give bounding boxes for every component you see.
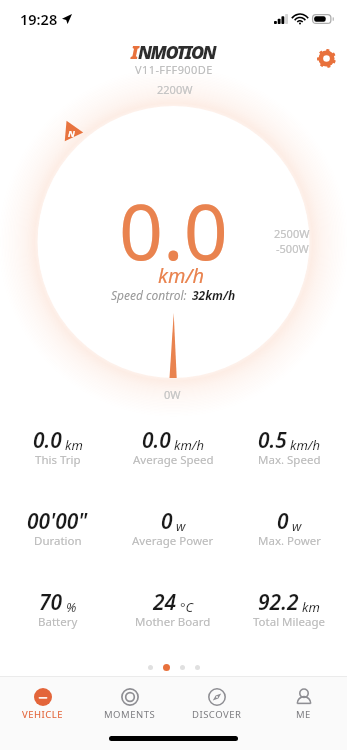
button[interactable]: DISCOVER xyxy=(173,682,260,724)
staticText: Total Mileage xyxy=(253,614,325,630)
button[interactable]: 70 xyxy=(0,584,115,665)
staticText: 0W xyxy=(164,387,181,402)
staticText: NMOTION xyxy=(138,40,216,65)
staticText: ME xyxy=(296,708,311,721)
button[interactable]: Page 3 xyxy=(180,665,185,670)
staticText: 92.2 xyxy=(258,588,299,617)
staticText: DISCOVER xyxy=(192,708,242,721)
staticText: km xyxy=(65,436,83,454)
button[interactable]: 24 xyxy=(115,584,231,665)
button[interactable]: Page 2 xyxy=(163,664,170,671)
staticText: 19:28 xyxy=(20,9,58,29)
staticText: w xyxy=(176,517,186,535)
staticText: 32km/h xyxy=(192,287,236,303)
staticText: I xyxy=(131,40,138,65)
staticText: 24 xyxy=(153,588,177,617)
staticText: Duration xyxy=(34,533,82,549)
button[interactable]: Settings xyxy=(309,41,343,75)
staticText: % xyxy=(66,598,77,616)
staticText: 00'00" xyxy=(27,507,88,536)
button[interactable]: VEHICLE xyxy=(0,682,86,724)
staticText: This Trip xyxy=(35,452,81,468)
staticText: MOMENTS xyxy=(104,708,156,721)
staticText: 2200W xyxy=(157,82,193,97)
staticText: km/h xyxy=(158,262,205,289)
staticText: Max. Power xyxy=(258,533,321,549)
button[interactable]: 0 xyxy=(231,503,347,584)
button[interactable]: MOMENTS xyxy=(86,682,173,724)
staticText: km/h xyxy=(174,436,204,454)
staticText: w xyxy=(292,517,302,535)
button[interactable]: 92.2 xyxy=(231,584,347,665)
staticText: 0.0 xyxy=(33,426,62,455)
button[interactable]: 0 xyxy=(115,503,231,584)
staticText: Max. Speed xyxy=(258,452,321,468)
staticText: km/h xyxy=(290,436,320,454)
button[interactable]: 00'00" xyxy=(0,503,115,584)
button[interactable]: 0.5 xyxy=(231,422,347,503)
staticText: V11-FFF900DE xyxy=(135,62,213,77)
staticText: km xyxy=(302,598,320,616)
staticText: 0.0 xyxy=(119,178,228,283)
staticText: °C xyxy=(180,598,194,616)
staticText: 70 xyxy=(39,588,63,617)
staticText: Battery xyxy=(38,614,78,630)
button[interactable]: ME xyxy=(260,682,347,724)
button[interactable]: 0.0 xyxy=(0,422,115,503)
staticText: 0 xyxy=(277,507,289,536)
staticText: Speed control: xyxy=(111,287,187,303)
button[interactable]: 0.0 xyxy=(115,422,231,503)
staticText: 2500W xyxy=(274,226,310,241)
button[interactable]: Page 1 xyxy=(148,665,153,670)
staticText: 0.0 xyxy=(142,426,171,455)
button[interactable]: Page 4 xyxy=(195,665,200,670)
staticText: -500W xyxy=(276,241,309,256)
staticText: 0.5 xyxy=(258,426,287,455)
staticText: Average Power xyxy=(132,533,214,549)
staticText: VEHICLE xyxy=(22,708,64,721)
staticText: Average Speed xyxy=(133,452,214,468)
staticText: 0 xyxy=(161,507,173,536)
staticText: N xyxy=(68,127,75,139)
staticText: Mother Board xyxy=(135,614,211,630)
